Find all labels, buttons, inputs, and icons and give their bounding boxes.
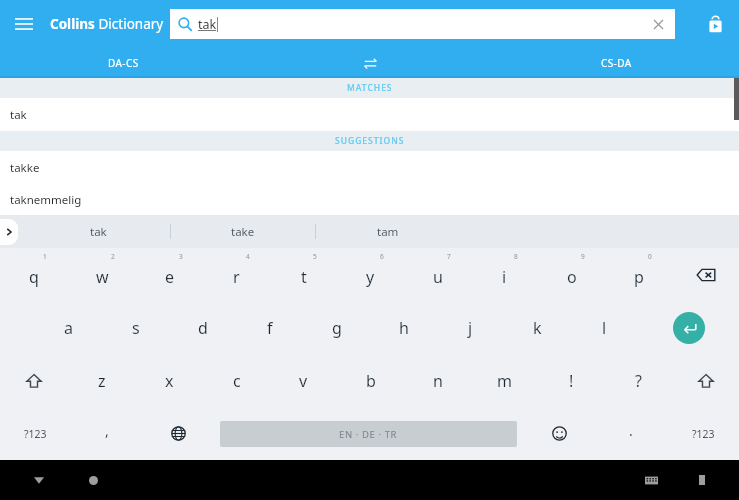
button[interactable]: 8 <box>471 248 538 301</box>
staticText: q <box>29 266 39 288</box>
staticText: 3 <box>179 252 183 261</box>
staticText: l <box>602 317 607 339</box>
button[interactable]: Swap languages <box>310 48 430 78</box>
button[interactable]: Shift <box>0 354 68 407</box>
button[interactable]: 5 <box>270 248 337 301</box>
button[interactable]: Shift <box>672 354 739 407</box>
button[interactable]: ? <box>605 354 672 407</box>
staticText: d <box>198 317 208 339</box>
staticText: u <box>433 266 443 288</box>
button[interactable]: d <box>169 301 236 354</box>
staticText: b <box>366 370 376 392</box>
staticText: , <box>105 421 109 440</box>
button[interactable]: Clear <box>647 13 669 35</box>
button[interactable]: ?123 <box>0 407 71 460</box>
button[interactable]: k <box>504 301 571 354</box>
staticText: 0 <box>648 252 652 261</box>
button[interactable]: m <box>471 354 538 407</box>
button[interactable]: Keyboard <box>636 465 666 495</box>
button[interactable]: 2 <box>68 248 136 301</box>
button[interactable]: 7 <box>404 248 471 301</box>
staticText: Collins <box>50 15 95 33</box>
button[interactable]: Back <box>24 465 54 495</box>
button[interactable]: CS-DA <box>493 48 739 78</box>
staticText: take <box>231 224 255 240</box>
button[interactable]: b <box>337 354 404 407</box>
staticText: s <box>132 317 140 339</box>
staticText: a <box>64 317 73 339</box>
button[interactable]: , <box>71 407 142 460</box>
staticText: v <box>299 370 308 392</box>
staticText: p <box>634 266 644 288</box>
staticText: taknemmelig <box>10 192 82 208</box>
staticText: 8 <box>514 252 518 261</box>
button[interactable]: takke <box>0 151 739 184</box>
staticText: 7 <box>447 252 451 261</box>
button[interactable]: n <box>404 354 471 407</box>
button[interactable]: DA-CS <box>0 48 246 78</box>
button[interactable]: l <box>571 301 638 354</box>
staticText: 2 <box>111 252 115 261</box>
staticText: EN · DE · TR <box>339 428 398 441</box>
button[interactable]: g <box>303 301 370 354</box>
button[interactable]: Recents <box>687 465 717 495</box>
button[interactable]: ?123 <box>667 407 739 460</box>
staticText: t <box>301 266 307 288</box>
button[interactable]: 1 <box>0 248 68 301</box>
staticText: ?123 <box>692 427 715 441</box>
staticText: z <box>98 370 106 392</box>
staticText: tak <box>90 224 107 240</box>
button[interactable]: x <box>136 354 203 407</box>
staticText: j <box>468 317 473 339</box>
button[interactable]: s <box>102 301 169 354</box>
staticText: n <box>433 370 443 392</box>
staticText: r <box>233 266 240 288</box>
button[interactable]: take <box>171 215 315 248</box>
staticText: takke <box>10 160 40 176</box>
button[interactable]: tak <box>170 9 675 39</box>
staticText: 1 <box>43 252 47 261</box>
button[interactable]: v <box>270 354 337 407</box>
staticText: CS-DA <box>601 56 632 70</box>
button[interactable]: 0 <box>605 248 672 301</box>
button[interactable]: 6 <box>337 248 404 301</box>
button[interactable]: h <box>370 301 437 354</box>
button[interactable]: Space <box>214 407 523 460</box>
staticText: c <box>233 370 241 392</box>
staticText: tak <box>10 107 27 123</box>
button[interactable]: Home <box>78 465 108 495</box>
staticText: e <box>165 266 175 288</box>
button[interactable]: z <box>68 354 136 407</box>
button[interactable]: tak <box>26 215 170 248</box>
button[interactable]: Emoji <box>523 407 595 460</box>
button[interactable]: Enter <box>638 301 739 354</box>
staticText: y <box>366 266 375 288</box>
button[interactable]: f <box>236 301 303 354</box>
button[interactable]: a <box>35 301 102 354</box>
button[interactable]: Change language <box>142 407 214 460</box>
staticText: x <box>165 370 174 392</box>
button[interactable]: Backspace <box>672 248 739 301</box>
staticText: h <box>399 317 409 339</box>
staticText: w <box>96 266 109 288</box>
button[interactable]: 3 <box>136 248 203 301</box>
staticText: ?123 <box>24 427 47 441</box>
button[interactable]: c <box>203 354 270 407</box>
button[interactable]: taknemmelig <box>0 184 739 215</box>
staticText: Dictionary <box>95 15 164 33</box>
button[interactable]: tam <box>316 215 460 248</box>
button[interactable]: ! <box>538 354 605 407</box>
button[interactable]: tak <box>0 98 739 131</box>
button[interactable]: 9 <box>538 248 605 301</box>
button[interactable]: Menu <box>6 6 42 42</box>
button[interactable]: 4 <box>203 248 270 301</box>
button[interactable]: Store <box>697 6 733 42</box>
staticText: DA-CS <box>108 56 139 70</box>
button[interactable]: j <box>437 301 504 354</box>
button[interactable]: Expand suggestions <box>0 219 18 245</box>
staticText: k <box>533 317 542 339</box>
staticText: ? <box>635 370 642 392</box>
staticText: . <box>629 421 633 440</box>
button[interactable]: . <box>595 407 667 460</box>
staticText: MATCHES <box>347 82 393 94</box>
